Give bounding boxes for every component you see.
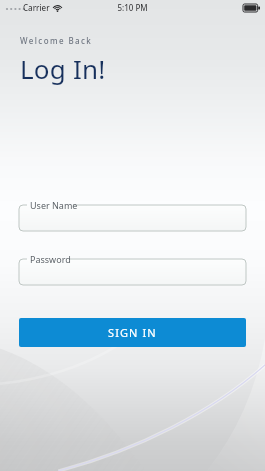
staticText: 5:10 PM — [117, 2, 148, 13]
staticText: Welcome Back — [20, 35, 93, 46]
staticText: Password — [30, 253, 71, 265]
staticText: SIGN IN — [108, 325, 157, 340]
button[interactable]: SIGN IN — [19, 318, 246, 347]
staticText: User Name — [30, 199, 78, 211]
staticText: Carrier — [23, 2, 50, 13]
staticText: Log In! — [20, 51, 106, 86]
